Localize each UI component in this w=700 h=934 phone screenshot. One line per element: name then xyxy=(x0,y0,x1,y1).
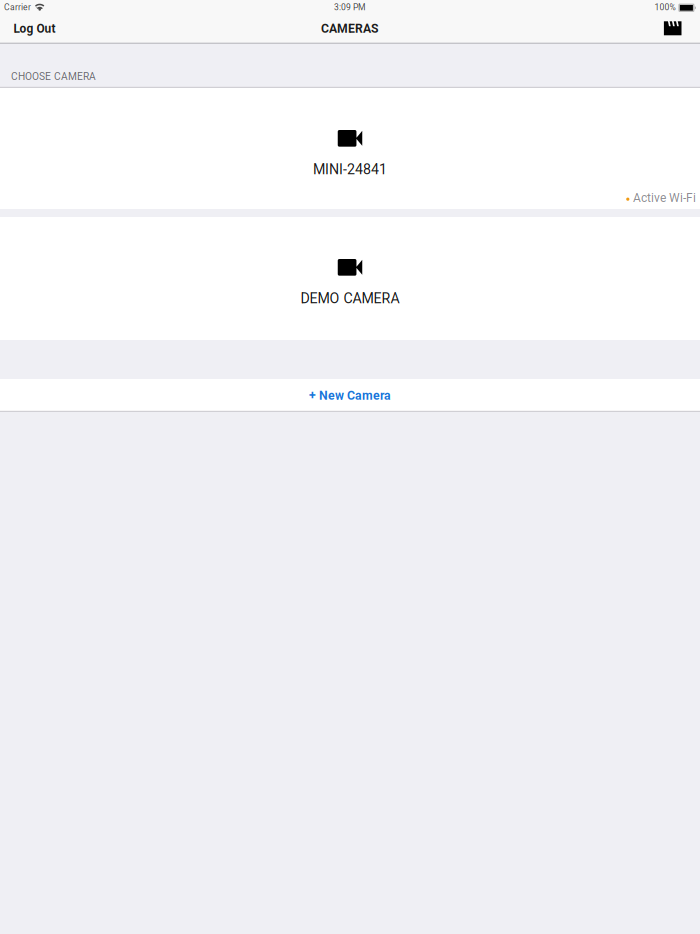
staticText: CHOOSE CAMERA xyxy=(11,70,96,82)
staticText: 100% xyxy=(654,2,675,12)
staticText: Log Out xyxy=(13,22,55,35)
button[interactable]: + New Camera xyxy=(0,379,700,412)
staticText: + New Camera xyxy=(309,388,391,403)
button[interactable]: MINI-24841 xyxy=(0,88,700,209)
button[interactable]: Recordings xyxy=(654,17,694,39)
staticText: 3:09 PM xyxy=(334,2,366,12)
staticText: CAMERAS xyxy=(321,21,379,36)
staticText: Active Wi-Fi xyxy=(633,191,696,205)
staticText: MINI-24841 xyxy=(313,161,387,178)
button[interactable]: DEMO CAMERA xyxy=(0,217,700,340)
staticText: Carrier xyxy=(4,2,31,12)
staticText: DEMO CAMERA xyxy=(300,290,399,307)
button[interactable]: Log Out xyxy=(5,18,63,39)
